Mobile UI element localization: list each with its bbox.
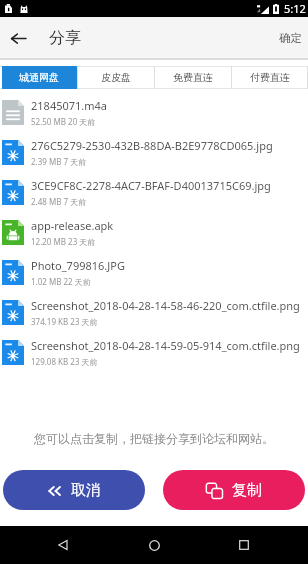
staticText: 12.20 MB 23 天前 bbox=[31, 236, 96, 247]
button[interactable]: 21845071.m4a bbox=[0, 92, 308, 132]
staticText: 付费直连 bbox=[250, 71, 290, 84]
button[interactable]: app-release.apk bbox=[0, 212, 308, 252]
staticText: 129.08 KB 23 天前 bbox=[31, 356, 98, 367]
staticText: 5:12 bbox=[284, 1, 306, 16]
button[interactable]: 确定 bbox=[273, 23, 308, 53]
button[interactable]: Screenshot_2018-04-28-14-59-05-914_com.c… bbox=[0, 332, 308, 372]
staticText: 免费直连 bbox=[173, 71, 213, 84]
staticText: Photo_799816.JPG bbox=[31, 258, 125, 273]
button[interactable]: 付费直连 bbox=[231, 66, 308, 89]
button[interactable]: Home bbox=[142, 533, 166, 557]
button[interactable]: 城通网盘 bbox=[0, 66, 77, 89]
button[interactable]: 276C5279-2530-432B-88DA-B2E9778CD065.jpg bbox=[0, 132, 308, 172]
button[interactable]: 复制 bbox=[163, 470, 305, 510]
staticText: 3CE9CF8C-2278-4AC7-BFAF-D40013715C69.jpg bbox=[31, 178, 271, 193]
button[interactable]: Recents bbox=[232, 533, 256, 557]
staticText: 21845071.m4a bbox=[31, 98, 108, 113]
staticText: 2.39 MB 7 天前 bbox=[31, 156, 87, 167]
staticText: 276C5279-2530-432B-88DA-B2E9778CD065.jpg bbox=[31, 138, 273, 153]
staticText: 374.19 KB 23 天前 bbox=[31, 316, 98, 327]
staticText: Screenshot_2018-04-28-14-59-05-914_com.c… bbox=[31, 338, 300, 353]
staticText: 分享 bbox=[49, 28, 81, 48]
button[interactable]: Photo_799816.JPG bbox=[0, 252, 308, 292]
staticText: 52.50 MB 20 天前 bbox=[31, 116, 96, 127]
button[interactable]: Back bbox=[51, 533, 75, 557]
button[interactable]: Back bbox=[4, 24, 32, 52]
staticText: app-release.apk bbox=[31, 218, 114, 233]
button[interactable]: 皮皮盘 bbox=[77, 66, 154, 89]
staticText: Screenshot_2018-04-28-14-58-46-220_com.c… bbox=[31, 298, 300, 313]
staticText: 1.02 MB 22 天前 bbox=[31, 276, 91, 287]
button[interactable]: Screenshot_2018-04-28-14-58-46-220_com.c… bbox=[0, 292, 308, 332]
button[interactable]: 取消 bbox=[3, 470, 145, 510]
button[interactable]: 3CE9CF8C-2278-4AC7-BFAF-D40013715C69.jpg bbox=[0, 172, 308, 212]
staticText: 您可以点击复制，把链接分享到论坛和网站。 bbox=[0, 431, 308, 446]
staticText: 2.48 MB 7 天前 bbox=[31, 196, 87, 207]
staticText: 确定 bbox=[279, 31, 302, 45]
staticText: 城通网盘 bbox=[19, 71, 59, 84]
staticText: 取消 bbox=[71, 481, 101, 500]
staticText: 复制 bbox=[232, 481, 262, 500]
staticText: 皮皮盘 bbox=[101, 71, 131, 84]
button[interactable]: 免费直连 bbox=[154, 66, 231, 89]
